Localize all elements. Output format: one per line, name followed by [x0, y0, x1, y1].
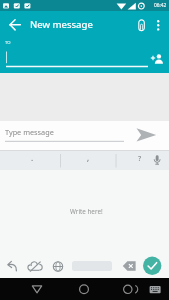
button[interactable] [120, 256, 138, 276]
button[interactable] [61, 151, 115, 169]
button[interactable] [0, 121, 130, 147]
button[interactable] [128, 151, 146, 169]
button[interactable] [3, 256, 21, 276]
button[interactable] [3, 44, 146, 70]
staticText: 06:42 [154, 2, 167, 9]
button[interactable] [147, 281, 164, 298]
button[interactable] [26, 256, 44, 276]
button[interactable] [133, 16, 150, 34]
staticText: , [87, 152, 90, 163]
button[interactable] [74, 281, 94, 298]
button[interactable] [72, 258, 112, 274]
staticText: TO [5, 40, 11, 46]
button[interactable] [148, 151, 166, 169]
staticText: . [31, 152, 34, 163]
button[interactable] [6, 16, 24, 34]
button[interactable] [49, 256, 67, 276]
button[interactable] [151, 16, 166, 34]
staticText: Type message [5, 127, 54, 137]
button[interactable] [146, 48, 166, 66]
button[interactable] [118, 281, 138, 298]
staticText: Write here! [70, 207, 103, 216]
button[interactable] [132, 123, 162, 147]
staticText: New message [30, 18, 93, 31]
button[interactable] [27, 281, 47, 298]
staticText: ? [138, 153, 142, 163]
button[interactable] [142, 256, 162, 276]
